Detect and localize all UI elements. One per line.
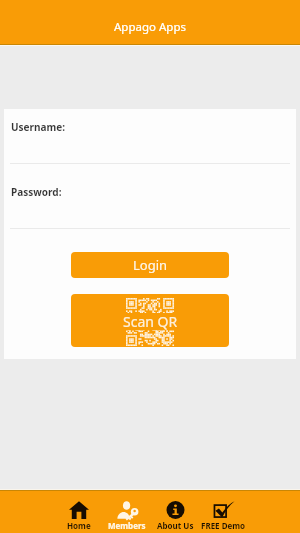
- staticText: Appago Apps: [114, 19, 186, 35]
- staticText: Members: [108, 520, 146, 531]
- staticText: Username:: [11, 120, 66, 134]
- button[interactable]: FREE Demo: [199, 491, 247, 533]
- button[interactable]: Login: [71, 252, 229, 278]
- staticText: Home: [67, 520, 91, 531]
- staticText: About Us: [157, 520, 194, 531]
- staticText: Scan QR: [123, 312, 178, 331]
- button[interactable]: About Us: [151, 491, 199, 533]
- button[interactable]: Home: [55, 491, 103, 533]
- staticText: Login: [133, 256, 168, 274]
- button[interactable]: Members: [103, 491, 151, 533]
- staticText: Password:: [11, 185, 62, 199]
- staticText: FREE Demo: [201, 520, 246, 531]
- button[interactable]: Scan QR: [71, 294, 229, 347]
